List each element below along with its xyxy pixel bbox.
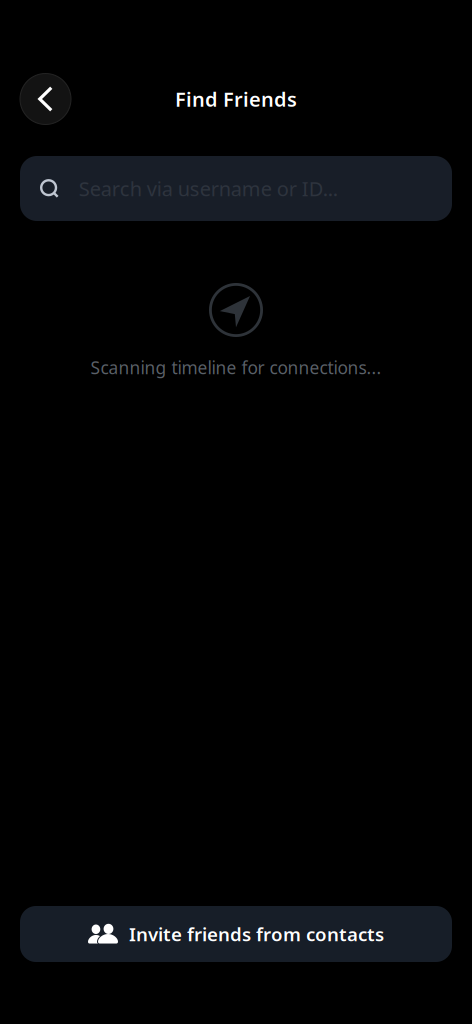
button[interactable]: Search via username or ID... [20,156,452,221]
staticText: Scanning timeline for connections... [90,356,381,379]
button[interactable]: Back [20,73,71,124]
button[interactable]: Invite friends from contacts [20,906,452,962]
staticText: Invite friends from contacts [129,922,384,946]
staticText: Search via username or ID... [79,175,338,202]
staticText: Find Friends [175,86,297,112]
